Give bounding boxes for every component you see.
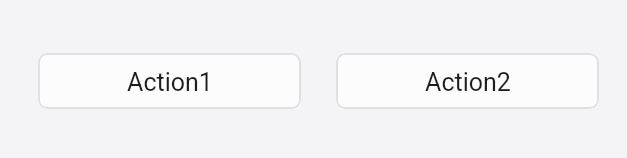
button[interactable]: Action1 (38, 53, 301, 109)
staticText: Action1 (127, 68, 213, 97)
staticText: Action2 (425, 68, 511, 97)
button[interactable]: Action2 (336, 53, 599, 109)
